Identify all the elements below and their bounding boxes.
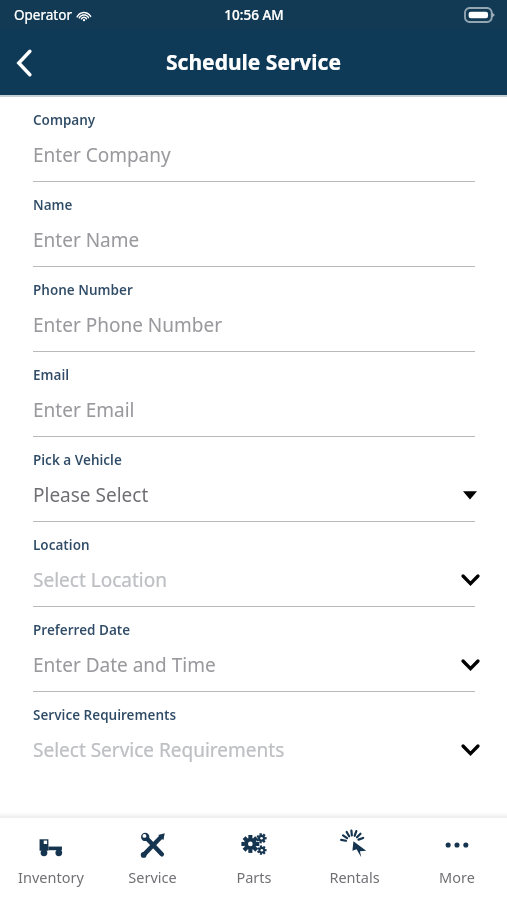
staticText: Schedule Service xyxy=(166,48,341,77)
staticText: Select Location xyxy=(33,567,167,593)
staticText: Service xyxy=(128,867,177,887)
staticText: Inventory xyxy=(18,867,84,887)
staticText: Select Service Requirements xyxy=(33,737,285,763)
staticText: Company xyxy=(33,111,96,129)
button[interactable]: Parts xyxy=(203,818,304,887)
staticText: Phone Number xyxy=(33,281,133,299)
button[interactable]: Location xyxy=(0,522,507,607)
button[interactable]: Rentals xyxy=(304,818,405,887)
staticText: 10:56 AM xyxy=(224,6,284,24)
button[interactable]: Phone Number xyxy=(0,267,507,352)
button[interactable]: Name xyxy=(0,182,507,267)
staticText: Location xyxy=(33,536,90,554)
staticText: Enter Name xyxy=(33,227,140,253)
staticText: Preferred Date xyxy=(33,621,131,639)
button[interactable]: Preferred Date xyxy=(0,607,507,692)
button[interactable]: Service xyxy=(102,818,203,887)
staticText: Please Select xyxy=(33,482,149,508)
button[interactable]: Company xyxy=(0,97,507,182)
staticText: Email xyxy=(33,366,70,384)
staticText: Enter Phone Number xyxy=(33,312,222,338)
staticText: More xyxy=(439,867,475,887)
staticText: Enter Company xyxy=(33,142,171,168)
staticText: Enter Date and Time xyxy=(33,652,216,678)
button[interactable]: Email xyxy=(0,352,507,437)
button[interactable]: Pick a Vehicle xyxy=(0,437,507,522)
staticText: Operator xyxy=(14,6,72,24)
staticText: Enter Email xyxy=(33,397,135,423)
button[interactable]: Back xyxy=(0,39,48,87)
staticText: Service Requirements xyxy=(33,706,177,724)
button[interactable]: Inventory xyxy=(0,818,101,887)
staticText: Name xyxy=(33,196,73,214)
staticText: Parts xyxy=(236,867,272,887)
button[interactable]: Service Requirements xyxy=(0,692,507,776)
staticText: Rentals xyxy=(329,867,380,887)
staticText: Pick a Vehicle xyxy=(33,451,122,469)
button[interactable]: More xyxy=(406,818,507,887)
